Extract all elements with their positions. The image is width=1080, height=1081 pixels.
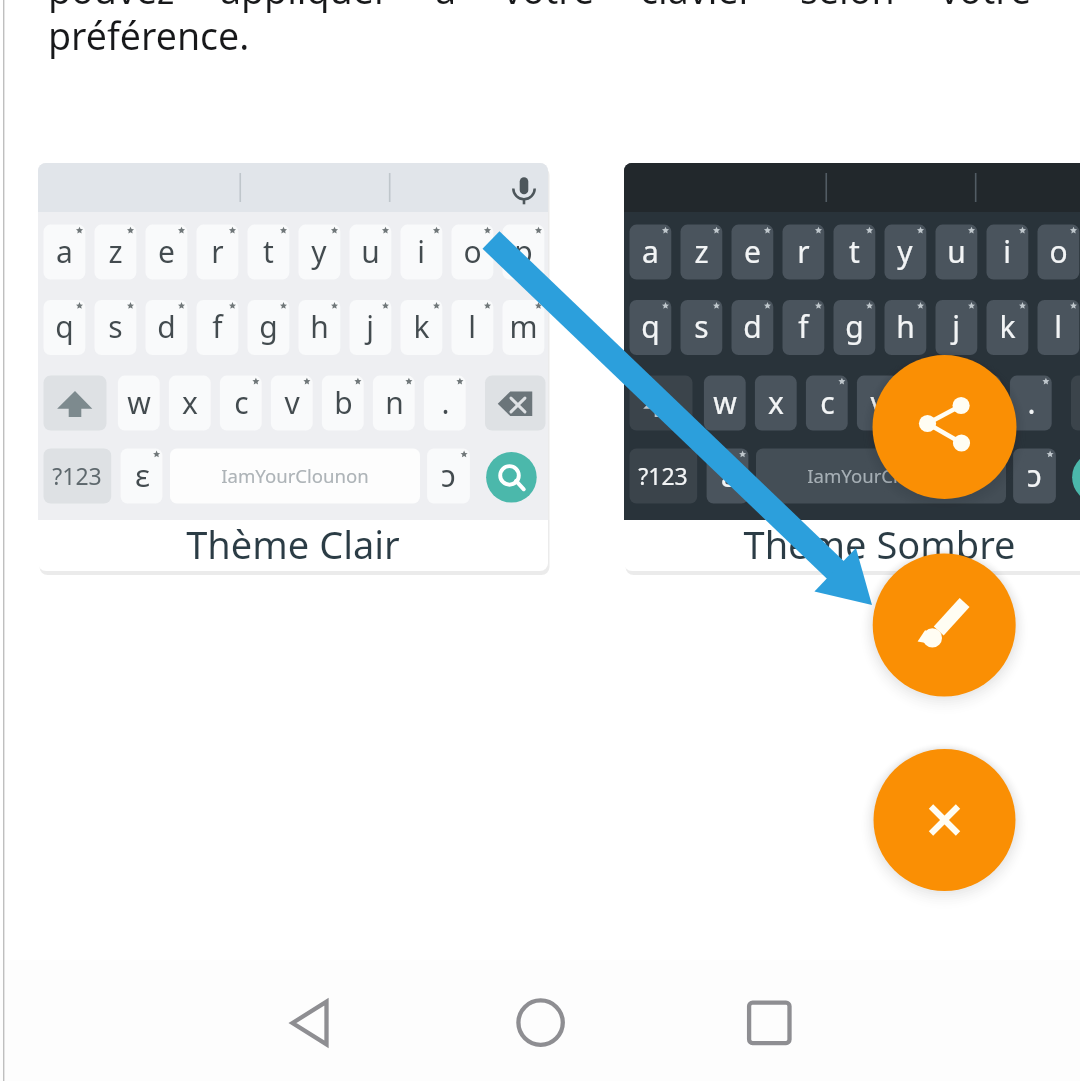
- staticText: appliquer: [220, 0, 390, 15]
- staticText: z: [694, 231, 709, 272]
- staticText: q: [55, 306, 74, 347]
- staticText: r: [211, 231, 224, 272]
- staticText: a: [642, 231, 659, 272]
- staticText: ɔ: [441, 454, 456, 496]
- staticText: j: [952, 306, 960, 347]
- staticText: s: [108, 306, 123, 347]
- button[interactable]: Thème Clair: [38, 163, 548, 571]
- staticText: ɛ: [135, 454, 150, 496]
- staticText: g: [259, 306, 278, 347]
- staticText: IamYourClounon: [221, 463, 369, 488]
- staticText: b: [334, 382, 353, 423]
- staticText: j: [366, 306, 374, 347]
- staticText: .: [1027, 382, 1036, 423]
- button[interactable]: Recents: [686, 962, 844, 1081]
- staticText: ɛ: [721, 454, 736, 496]
- staticText: h: [896, 306, 915, 347]
- staticText: u: [361, 231, 380, 272]
- staticText: w: [127, 382, 151, 423]
- staticText: votre: [940, 0, 1032, 15]
- staticText: pouvez: [48, 0, 175, 15]
- staticText: k: [999, 306, 1016, 347]
- staticText: f: [798, 306, 809, 347]
- staticText: a: [56, 231, 73, 272]
- staticText: IamYourClounon: [807, 463, 955, 488]
- staticText: à: [435, 0, 457, 15]
- staticText: t: [849, 231, 860, 272]
- button[interactable]: Home: [461, 962, 619, 1081]
- staticText: x: [768, 382, 784, 423]
- staticText: w: [713, 382, 737, 423]
- button[interactable]: Thème Sombre: [624, 163, 1080, 571]
- staticText: p: [514, 231, 533, 272]
- staticText: Thème Clair: [186, 518, 400, 570]
- staticText: v: [870, 382, 886, 423]
- staticText: q: [641, 306, 660, 347]
- staticText: v: [284, 382, 300, 423]
- staticText: ?123: [52, 460, 102, 491]
- staticText: x: [182, 382, 198, 423]
- staticText: k: [413, 306, 430, 347]
- staticText: Thème Sombre: [743, 518, 1016, 570]
- staticText: .: [441, 382, 450, 423]
- staticText: clavier: [640, 0, 755, 15]
- staticText: ɔ: [1027, 454, 1042, 496]
- staticText: i: [1003, 231, 1011, 272]
- staticText: g: [845, 306, 864, 347]
- button[interactable]: Back: [230, 962, 388, 1081]
- staticText: u: [947, 231, 966, 272]
- staticText: d: [743, 306, 762, 347]
- staticText: y: [897, 231, 913, 272]
- button[interactable]: Close: [874, 750, 1015, 891]
- staticText: c: [234, 382, 249, 423]
- staticText: t: [263, 231, 274, 272]
- staticText: d: [157, 306, 176, 347]
- staticText: y: [311, 231, 327, 272]
- staticText: z: [108, 231, 123, 272]
- staticText: h: [310, 306, 329, 347]
- staticText: ?123: [638, 460, 688, 491]
- staticText: r: [797, 231, 810, 272]
- staticText: s: [694, 306, 709, 347]
- button[interactable]: Share: [872, 356, 1017, 501]
- staticText: n: [385, 382, 404, 423]
- button[interactable]: Change theme: [874, 554, 1015, 695]
- staticText: l: [468, 306, 476, 347]
- staticText: e: [744, 231, 761, 272]
- staticText: l: [1054, 306, 1062, 347]
- staticText: o: [463, 231, 482, 272]
- staticText: f: [212, 306, 223, 347]
- staticText: m: [509, 306, 538, 347]
- staticText: c: [820, 382, 835, 423]
- staticText: e: [158, 231, 175, 272]
- staticText: votre: [503, 0, 595, 15]
- staticText: i: [417, 231, 425, 272]
- staticText: selon: [800, 0, 895, 15]
- staticText: b: [920, 382, 939, 423]
- staticText: o: [1049, 231, 1068, 272]
- staticText: préférence.: [48, 10, 250, 61]
